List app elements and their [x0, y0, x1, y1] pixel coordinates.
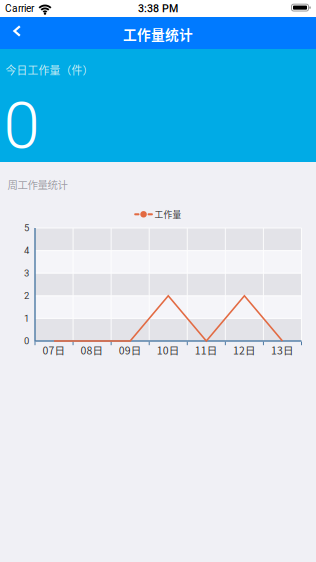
staticText: 13日 [271, 342, 294, 358]
staticText: 12日 [233, 342, 256, 358]
staticText: 0 [24, 335, 29, 347]
staticText: 2 [24, 290, 29, 301]
staticText: 4 [24, 245, 29, 256]
staticText: Carrier [5, 3, 34, 14]
staticText: 10日 [157, 342, 180, 358]
staticText: 09日 [119, 342, 142, 358]
staticText: 07日 [42, 342, 65, 358]
button[interactable]: Back [4, 17, 36, 49]
staticText: 0 [4, 87, 40, 164]
staticText: 11日 [195, 342, 218, 358]
staticText: 今日工作量（件） [5, 62, 93, 78]
staticText: 工作量统计 [123, 24, 193, 44]
staticText: 3:38 PM [138, 2, 178, 15]
staticText: 5 [24, 222, 29, 234]
staticText: 3 [24, 268, 29, 279]
staticText: 周工作量统计 [7, 177, 67, 192]
staticText: 08日 [81, 342, 104, 358]
staticText: 1 [24, 313, 29, 324]
staticText: 工作量 [154, 208, 181, 220]
